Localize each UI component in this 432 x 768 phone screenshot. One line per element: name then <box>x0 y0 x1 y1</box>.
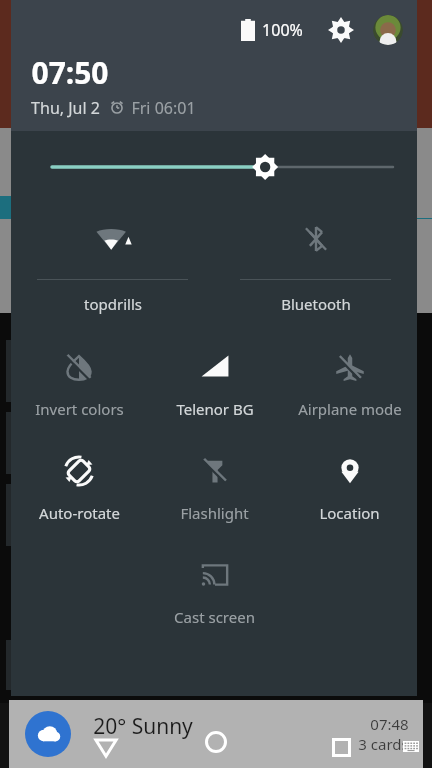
button[interactable]: Auto-rotate <box>11 441 147 545</box>
staticText: Telenor BG <box>176 399 254 419</box>
button[interactable]: Weather <box>25 711 71 757</box>
staticText: 07:50 <box>31 52 109 93</box>
button[interactable]: Invert colors <box>11 337 147 441</box>
staticText: Airplane mode <box>298 399 402 419</box>
staticText: Flashlight <box>180 503 249 523</box>
staticText: Location <box>319 503 380 523</box>
button[interactable]: Keyboard <box>401 736 421 756</box>
button[interactable]: Back <box>89 730 123 764</box>
staticText: Auto-rotate <box>39 503 120 523</box>
other: Bluetooth <box>298 221 334 257</box>
staticText: Thu, Jul 2 <box>31 97 100 119</box>
button[interactable]: Settings <box>325 14 357 46</box>
button[interactable]: Cast screen <box>147 545 282 649</box>
staticText: Bluetooth <box>281 294 351 314</box>
staticText: Invert colors <box>35 399 124 419</box>
staticText: 20° Sunny <box>93 712 193 741</box>
staticText: 07:48 <box>370 714 409 734</box>
staticText: 100% <box>262 19 303 41</box>
button[interactable]: Home <box>197 723 235 761</box>
button[interactable]: Recent apps <box>324 730 358 764</box>
other: Wi-Fi topdrills <box>95 221 131 257</box>
button[interactable]: Airplane mode <box>282 337 417 441</box>
button[interactable]: Bluetooth <box>214 199 417 337</box>
button[interactable]: Telenor BG <box>147 337 282 441</box>
staticText: topdrills <box>84 294 142 314</box>
button[interactable]: Brightness <box>11 131 417 203</box>
button[interactable]: Wi-Fi topdrills <box>11 199 214 337</box>
button[interactable]: Location <box>282 441 417 545</box>
button[interactable]: User profile <box>373 15 403 45</box>
staticText: 3 cards <box>358 734 409 754</box>
staticText: Cast screen <box>174 607 255 627</box>
button[interactable]: Flashlight <box>147 441 282 545</box>
staticText: Fri 06:01 <box>131 97 196 119</box>
